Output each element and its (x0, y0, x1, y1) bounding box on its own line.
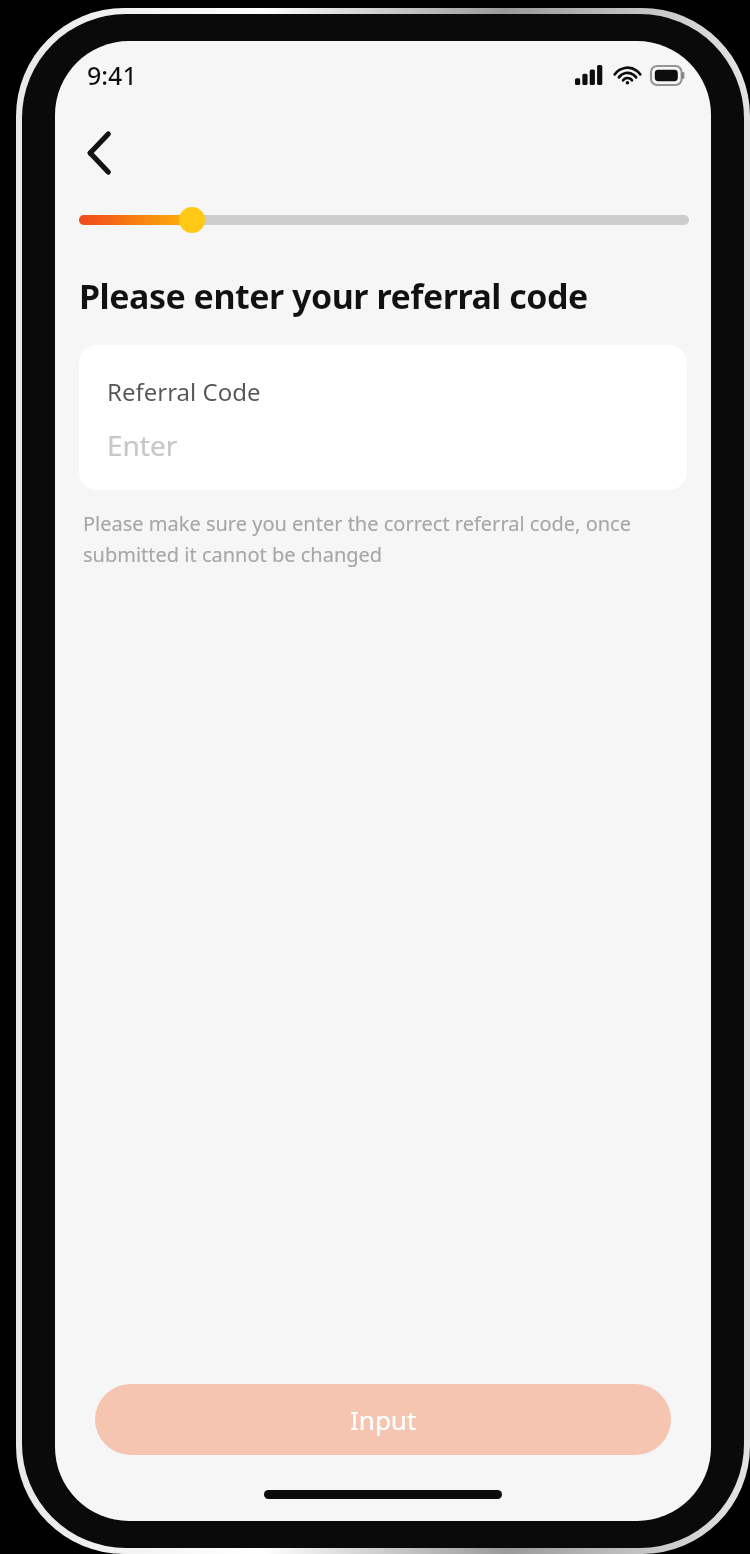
staticText: Input (350, 1402, 417, 1437)
staticText: Enter (107, 426, 178, 464)
staticText: Please enter your referral code (79, 273, 588, 319)
staticText: Please make sure you enter the correct r… (83, 510, 675, 567)
staticText: Referral Code (107, 375, 261, 408)
staticText: 9:41 (87, 58, 137, 92)
button[interactable]: Input (95, 1384, 671, 1455)
button[interactable]: Referral Code (79, 345, 687, 490)
button[interactable]: Back (67, 121, 131, 185)
